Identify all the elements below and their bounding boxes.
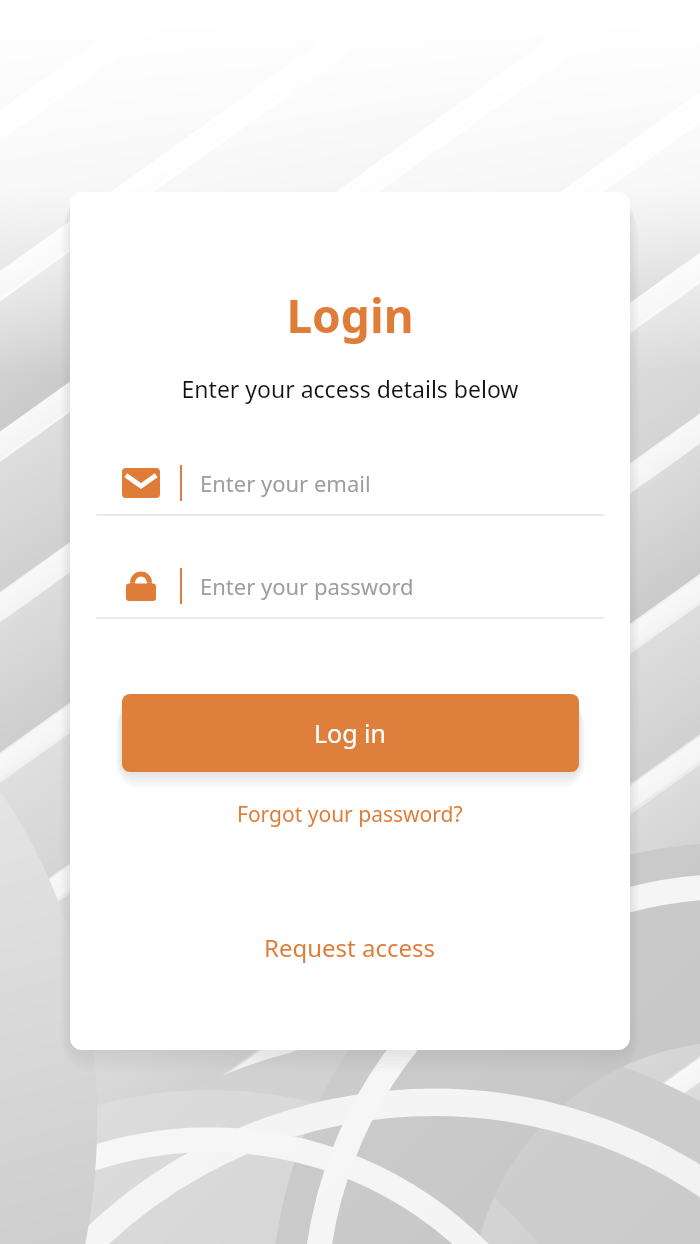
button[interactable]: Email	[96, 452, 604, 516]
staticText: Enter your email	[200, 468, 371, 498]
staticText: Enter your password	[200, 571, 414, 601]
other: Password	[122, 567, 160, 605]
button[interactable]: Request access	[256, 927, 444, 968]
staticText: Request access	[264, 931, 436, 964]
staticText: Login	[70, 284, 630, 347]
staticText: Forgot your password?	[237, 800, 463, 829]
button[interactable]: Password	[96, 555, 604, 619]
button[interactable]: Forgot your password?	[229, 796, 471, 833]
staticText: Log in	[314, 716, 387, 750]
other: Email	[122, 464, 160, 502]
button[interactable]: Log in	[122, 694, 579, 772]
staticText: Enter your access details below	[70, 373, 630, 404]
